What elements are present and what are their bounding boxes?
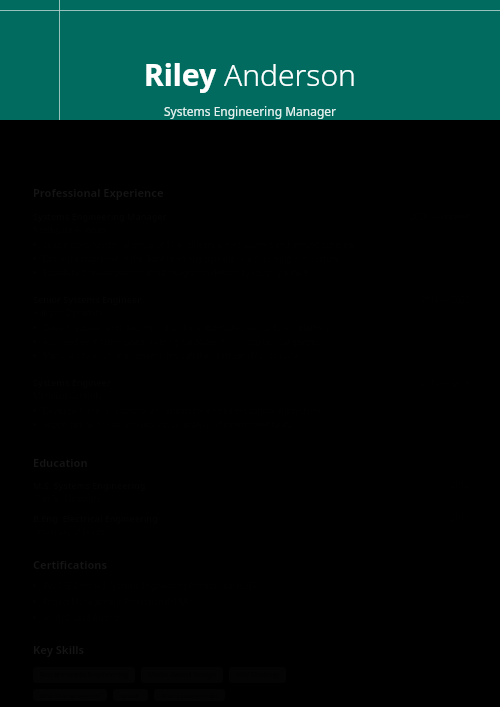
staticText: Education — [33, 455, 88, 470]
staticText: Certifications — [33, 557, 108, 572]
staticText: Key Skills — [33, 642, 85, 657]
staticText: Professional Experience — [33, 185, 164, 200]
staticText: Systems Engineering Manager — [164, 103, 336, 119]
button[interactable]: Professional Experience — [33, 185, 470, 200]
button[interactable]: Riley Anderson, Systems Engineering Mana… — [0, 0, 500, 120]
staticText: Riley Anderson — [144, 54, 356, 95]
